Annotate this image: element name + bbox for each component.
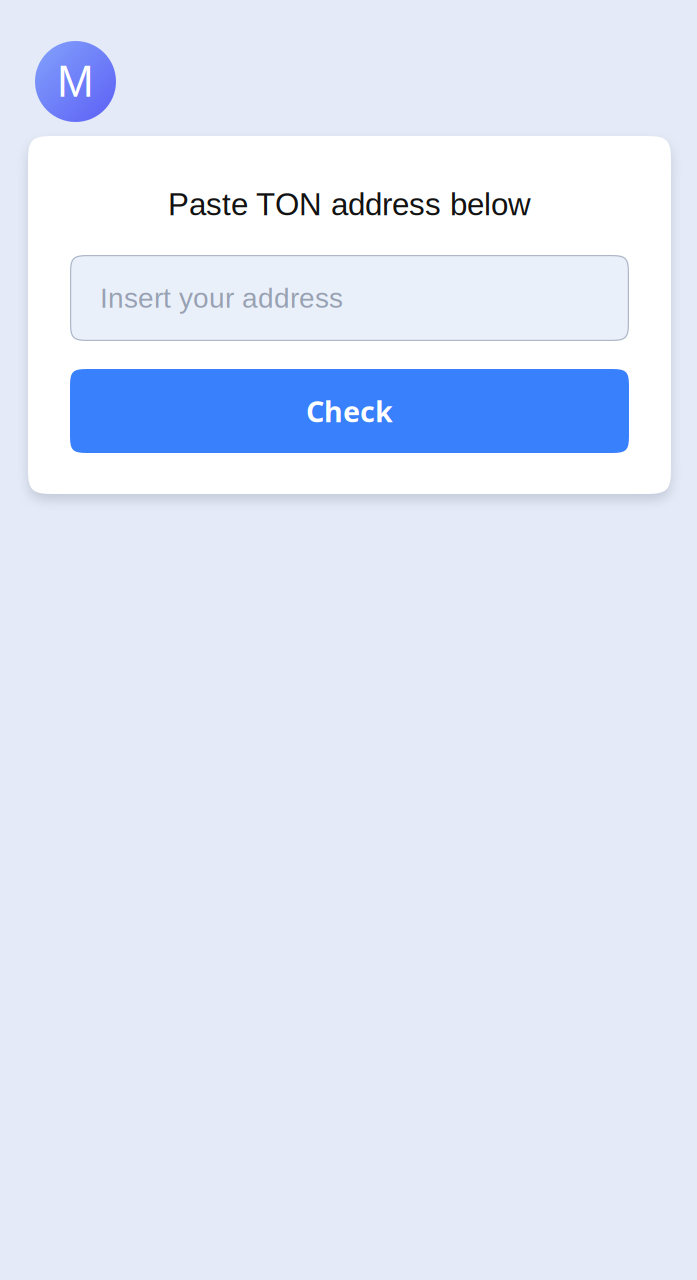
button[interactable]: Insert your address: [70, 255, 629, 341]
staticText: Check: [306, 391, 393, 430]
staticText: Paste TON address below: [168, 187, 531, 222]
staticText: M: [57, 57, 94, 106]
button[interactable]: Account: [35, 41, 116, 122]
staticText: Insert your address: [100, 282, 343, 314]
button[interactable]: Check: [70, 369, 629, 453]
